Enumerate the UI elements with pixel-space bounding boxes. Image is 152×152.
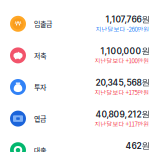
staticText: 1,100,000원 (100, 46, 149, 56)
staticText: 저축 (34, 50, 46, 60)
staticText: 지난달보다 +175만원 (94, 88, 149, 97)
button[interactable]: 연금 (0, 103, 152, 134)
staticText: 대출 (34, 145, 46, 152)
staticText: 지난달보다 +100만원 (94, 56, 149, 65)
staticText: 462원 (125, 140, 149, 151)
button[interactable]: 대출 (0, 134, 152, 152)
staticText: 투자 (34, 82, 46, 92)
staticText: 20,345,568원 (95, 77, 149, 88)
staticText: 지난달보다 -260만원 (95, 25, 149, 34)
staticText: 연금 (34, 114, 46, 124)
staticText: 40,809,212원 (95, 109, 149, 119)
button[interactable]: 저축 (0, 40, 152, 71)
button[interactable]: 입출금 (0, 8, 152, 40)
staticText: 지난달보다 +117만원 (94, 119, 149, 128)
button[interactable]: 투자 (0, 71, 152, 103)
staticText: 입출금 (34, 19, 52, 29)
staticText: 1,107,766원 (105, 14, 149, 25)
